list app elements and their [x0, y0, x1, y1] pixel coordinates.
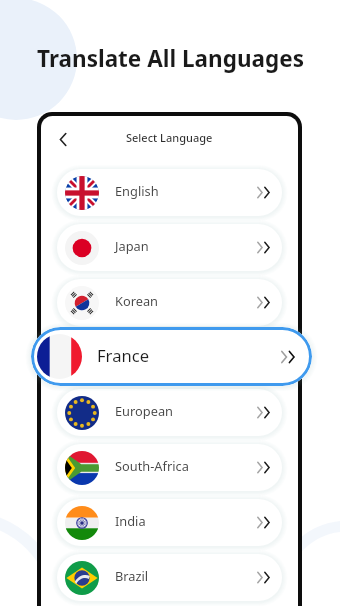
staticText: India — [115, 512, 146, 529]
button[interactable]: Brazil — [57, 554, 282, 601]
button[interactable]: European — [57, 389, 282, 436]
button[interactable]: English — [57, 169, 282, 216]
staticText: Translate All Languages — [37, 43, 304, 74]
button[interactable]: India — [57, 499, 282, 546]
staticText: South-Africa — [115, 457, 189, 474]
staticText: Brazil — [115, 567, 149, 584]
button[interactable]: Japan — [57, 224, 282, 271]
staticText: European — [115, 402, 173, 419]
button[interactable]: Back — [51, 127, 75, 151]
staticText: Select Language — [126, 130, 213, 145]
staticText: France — [97, 344, 150, 367]
staticText: Japan — [115, 237, 149, 254]
button[interactable]: South-Africa — [57, 444, 282, 491]
button[interactable]: Korean — [57, 279, 282, 326]
staticText: English — [115, 182, 159, 199]
button[interactable]: France — [31, 327, 312, 386]
staticText: Korean — [115, 292, 158, 309]
